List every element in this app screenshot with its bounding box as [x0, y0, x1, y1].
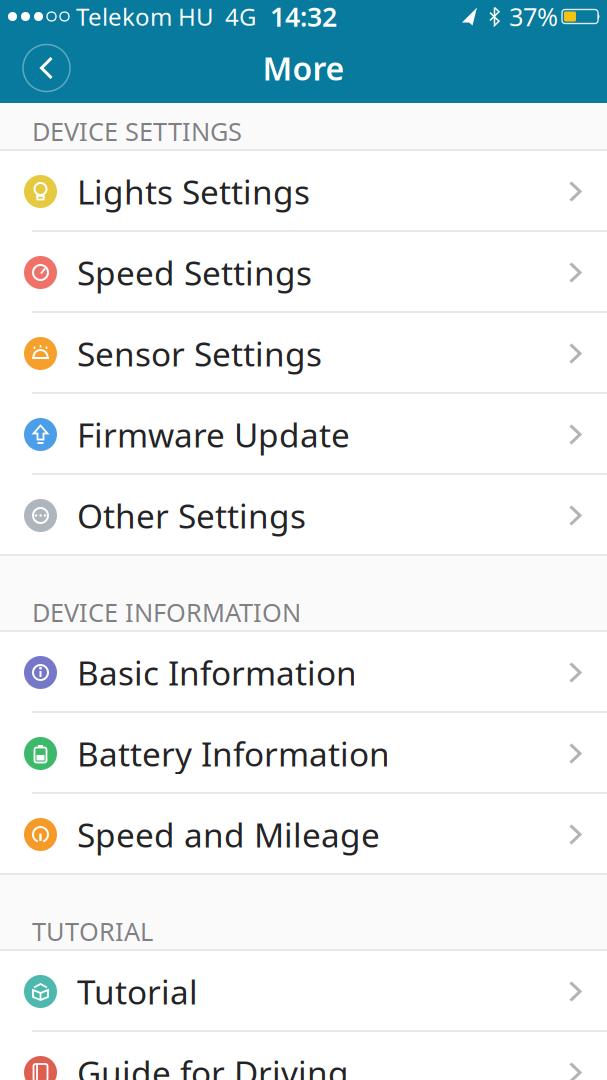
button[interactable]: Firmware Update: [0, 394, 607, 475]
staticText: Basic Information: [77, 650, 357, 695]
staticText: Lights Settings: [77, 169, 310, 214]
button[interactable]: Tutorial: [0, 951, 607, 1032]
staticText: TUTORIAL: [32, 914, 153, 948]
button[interactable]: Lights Settings: [0, 151, 607, 232]
staticText: DEVICE SETTINGS: [32, 114, 242, 148]
staticText: 37%: [509, 0, 558, 33]
staticText: Sensor Settings: [77, 331, 322, 376]
staticText: Guide for Driving: [77, 1050, 349, 1080]
staticText: Battery Information: [77, 731, 390, 776]
staticText: More: [262, 47, 344, 89]
staticText: DEVICE INFORMATION: [32, 595, 301, 629]
button[interactable]: Other Settings: [0, 475, 607, 556]
button[interactable]: Guide for Driving: [0, 1032, 607, 1080]
button[interactable]: [23, 44, 70, 91]
staticText: Other Settings: [77, 493, 306, 538]
button[interactable]: Speed and Mileage: [0, 794, 607, 875]
button[interactable]: Speed Settings: [0, 232, 607, 313]
button[interactable]: Battery Information: [0, 713, 607, 794]
staticText: Speed and Mileage: [77, 812, 380, 857]
staticText: Telekom HU: [76, 1, 214, 32]
staticText: Tutorial: [77, 969, 198, 1014]
staticText: 14:32: [270, 0, 337, 34]
staticText: Speed Settings: [77, 250, 312, 295]
staticText: Firmware Update: [77, 412, 350, 457]
staticText: 4G: [225, 1, 256, 32]
button[interactable]: Basic Information: [0, 632, 607, 713]
button[interactable]: Sensor Settings: [0, 313, 607, 394]
